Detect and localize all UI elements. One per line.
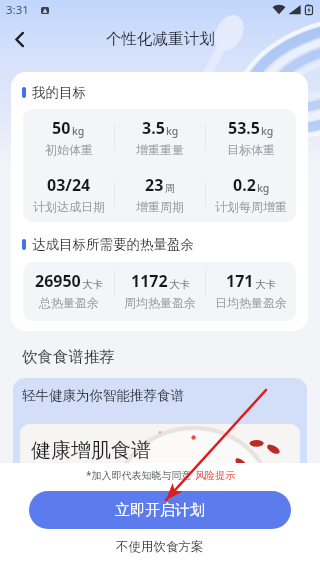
- staticText: 周均热量盈余: [124, 295, 196, 310]
- staticText: 总热量盈余: [39, 295, 99, 310]
- button[interactable]: 风险提示: [195, 469, 235, 482]
- staticText: 1172: [131, 270, 168, 292]
- staticText: 0.2: [233, 174, 256, 196]
- staticText: 171: [226, 270, 254, 292]
- button[interactable]: 立即开启计划: [29, 491, 291, 529]
- staticText: 50: [52, 117, 71, 139]
- staticText: 周: [165, 182, 176, 195]
- staticText: 轻牛健康为你智能推荐食谱: [22, 387, 184, 404]
- staticText: 个性化减重计划: [106, 29, 215, 49]
- staticText: 目标体重: [227, 142, 275, 157]
- staticText: 3.5: [142, 117, 165, 139]
- staticText: 初始体重: [45, 142, 93, 157]
- staticText: 我的目标: [32, 84, 86, 101]
- button[interactable]: 不使用饮食方案: [116, 539, 204, 555]
- staticText: 日均热量盈余: [215, 295, 287, 310]
- staticText: kg: [166, 124, 179, 138]
- staticText: kg: [72, 124, 85, 138]
- staticText: 增重周期: [136, 199, 184, 214]
- staticText: 53.5: [228, 117, 260, 139]
- staticText: 达成目标所需要的热量盈余: [32, 236, 194, 253]
- staticText: 大卡: [169, 278, 190, 291]
- staticText: 立即开启计划: [115, 501, 205, 520]
- staticText: kg: [257, 181, 270, 195]
- staticText: 23: [145, 174, 164, 196]
- staticText: 大卡: [255, 278, 276, 291]
- staticText: 健康增肌食谱: [31, 438, 151, 463]
- staticText: 03/24: [47, 174, 91, 196]
- staticText: 增重重量: [136, 142, 184, 157]
- button[interactable]: Back: [0, 20, 38, 58]
- staticText: 大卡: [82, 278, 103, 291]
- staticText: 3:31: [6, 2, 29, 18]
- staticText: 计划达成日期: [33, 199, 105, 214]
- staticText: 计划每周增重: [215, 199, 287, 214]
- button[interactable]: 轻牛健康为你智能推荐食谱: [13, 378, 307, 508]
- staticText: *加入即代表知晓与同意: [86, 468, 195, 482]
- staticText: 饮食食谱推荐: [22, 347, 115, 367]
- staticText: 26950: [35, 270, 81, 292]
- staticText: kg: [261, 124, 274, 138]
